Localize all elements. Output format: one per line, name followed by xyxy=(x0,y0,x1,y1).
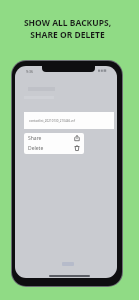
button[interactable]: contactlist_20210130_210446.vcf xyxy=(24,112,114,129)
staticText: Delete xyxy=(28,145,44,152)
staticText: Share xyxy=(28,135,42,142)
staticText: SHOW ALL BACKUPS, xyxy=(0,17,137,29)
staticText: SHARE OR DELETE xyxy=(0,29,137,41)
other: Share xyxy=(74,135,80,141)
button[interactable]: Share xyxy=(24,133,84,143)
staticText: contactlist_20210130_210446.vcf xyxy=(29,119,75,123)
button[interactable]: Delete xyxy=(24,143,84,153)
staticText: 9:36 xyxy=(26,69,33,74)
other: Delete xyxy=(74,145,80,151)
